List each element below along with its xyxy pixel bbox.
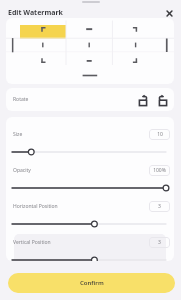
staticText: Size xyxy=(13,131,23,138)
button[interactable]: Position row 0 column 0 xyxy=(20,25,66,39)
staticText: Horizontal Position xyxy=(13,203,58,210)
button[interactable] xyxy=(12,183,166,193)
staticText: 3 xyxy=(158,203,161,210)
button[interactable]: Position row 1 column 2 xyxy=(112,38,158,52)
button[interactable] xyxy=(12,219,166,229)
staticText: Edit Watermark xyxy=(8,8,63,18)
button[interactable]: Position row 1 column 0 xyxy=(20,38,66,52)
staticText: Vertical Position xyxy=(13,239,51,246)
staticText: 3 xyxy=(158,239,161,246)
button[interactable]: Close xyxy=(162,6,177,21)
button[interactable]: Rotate left xyxy=(138,93,152,107)
button[interactable]: Position row 0 column 2 xyxy=(112,25,158,39)
button[interactable]: 3 xyxy=(149,201,170,212)
button[interactable]: Position row 2 column 2 xyxy=(112,52,158,66)
button[interactable] xyxy=(12,147,166,157)
button[interactable]: Position row 1 column 1 xyxy=(66,38,112,52)
button[interactable]: 3 xyxy=(149,237,170,248)
button[interactable] xyxy=(12,255,166,261)
button[interactable]: 10 xyxy=(149,129,170,140)
button[interactable]: Confirm xyxy=(8,273,175,293)
staticText: Confirm xyxy=(80,279,104,287)
staticText: Opacity xyxy=(13,167,31,174)
button[interactable]: Position row 2 column 1 xyxy=(66,52,112,66)
button[interactable]: 100% xyxy=(149,165,170,176)
button[interactable]: Position row 0 column 1 xyxy=(66,25,112,39)
staticText: 100% xyxy=(153,167,166,174)
button[interactable]: Position row 2 column 0 xyxy=(20,52,66,66)
staticText: Rotate xyxy=(13,96,29,103)
button[interactable]: Rotate right xyxy=(154,93,168,107)
staticText: 10 xyxy=(157,131,163,138)
